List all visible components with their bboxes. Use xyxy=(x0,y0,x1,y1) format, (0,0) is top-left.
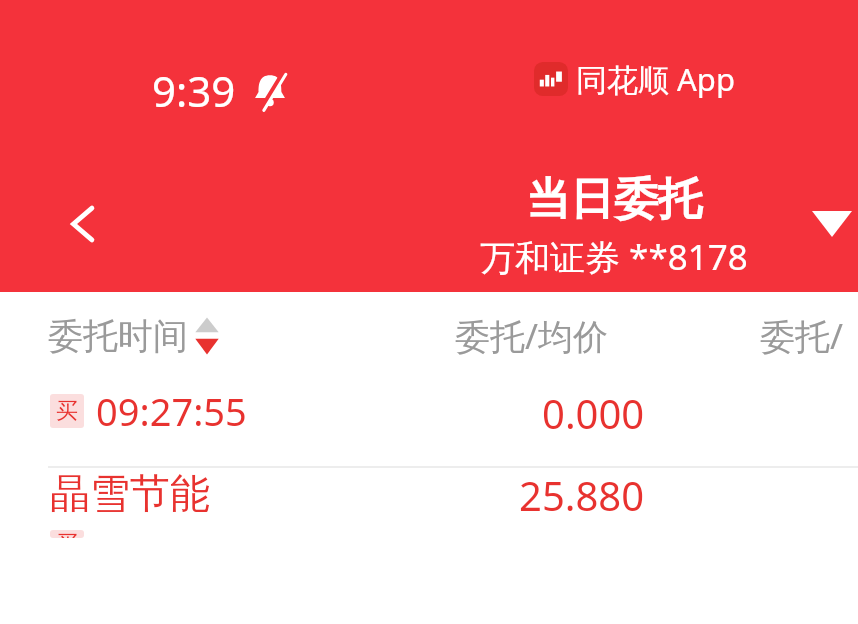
staticText: 晶雪节能 xyxy=(50,468,210,518)
button[interactable]: Back xyxy=(40,180,128,268)
button[interactable]: 委托/均价 xyxy=(455,312,609,360)
staticText: 委托时间 xyxy=(48,314,188,358)
staticText: 25.880 xyxy=(519,468,645,522)
staticText: 买 xyxy=(56,530,78,538)
button[interactable]: 宁波华翔 xyxy=(0,380,858,466)
staticText: 当日委托 xyxy=(526,172,702,227)
staticText: 9:39 xyxy=(152,62,236,119)
button[interactable]: 晶雪节能 xyxy=(0,468,858,538)
button[interactable]: 当日委托 xyxy=(430,172,798,281)
button[interactable]: Switch account xyxy=(806,192,858,256)
staticText: 0.000 xyxy=(542,386,645,440)
staticText: 万和证券 **8178 xyxy=(480,233,748,281)
staticText: 买 xyxy=(56,397,78,425)
staticText: 委托/ xyxy=(760,312,844,360)
button[interactable]: 委托时间 xyxy=(48,313,220,359)
staticText: 09:27:55 xyxy=(96,385,247,437)
staticText: 同花顺 App xyxy=(576,58,735,100)
staticText: 委托/均价 xyxy=(455,312,609,360)
button[interactable]: 委托/ xyxy=(760,312,844,360)
other: Silent mode xyxy=(248,69,292,113)
